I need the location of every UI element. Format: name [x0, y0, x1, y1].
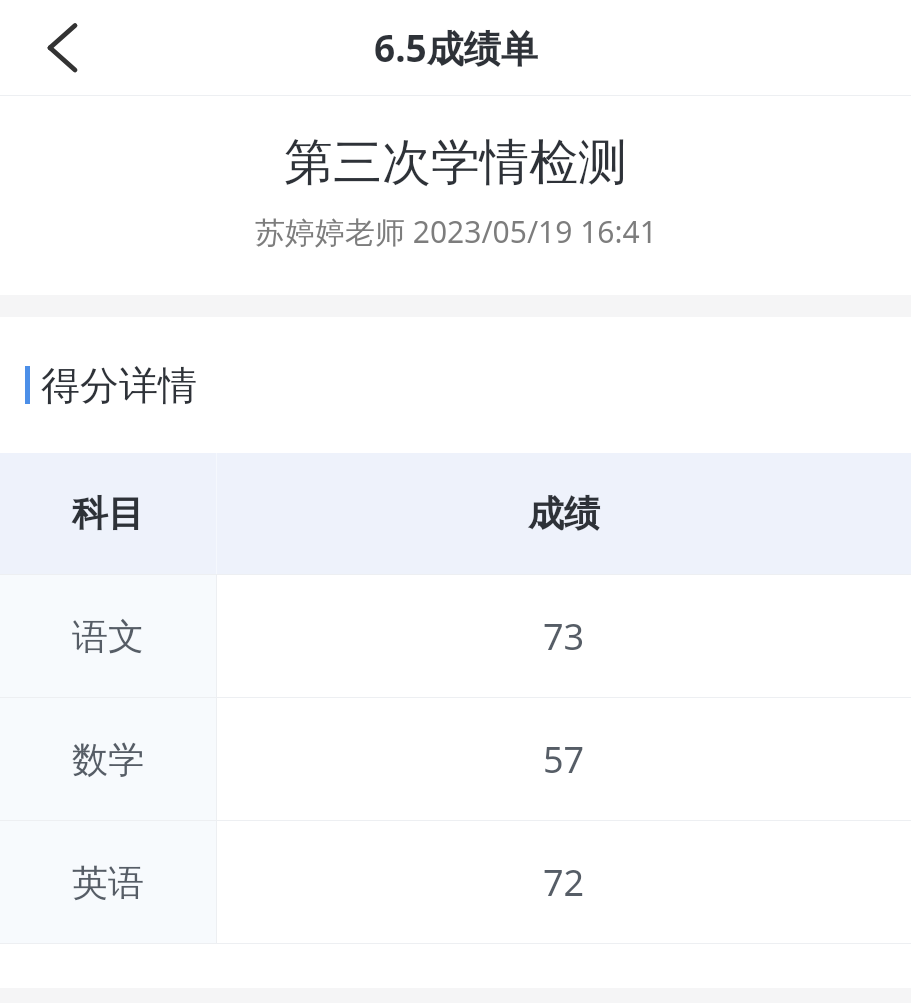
staticText: 73 — [543, 612, 585, 661]
staticText: 语文 — [72, 614, 144, 659]
button[interactable]: Back — [0, 0, 96, 95]
staticText: 英语 — [72, 860, 144, 905]
staticText: 得分详情 — [41, 361, 197, 410]
staticText: 成绩 — [528, 491, 600, 536]
button[interactable]: 数学 — [0, 698, 911, 821]
staticText: 苏婷婷老师 2023/05/19 16:41 — [255, 211, 657, 252]
staticText: 数学 — [72, 737, 144, 782]
staticText: 72 — [543, 858, 585, 907]
staticText: 科目 — [72, 491, 144, 536]
button[interactable]: 英语 — [0, 821, 911, 944]
staticText: 6.5成绩单 — [374, 22, 538, 73]
staticText: 57 — [543, 735, 585, 784]
staticText: 第三次学情检测 — [284, 132, 627, 194]
button[interactable]: 科目 — [0, 453, 911, 575]
button[interactable]: 语文 — [0, 575, 911, 698]
